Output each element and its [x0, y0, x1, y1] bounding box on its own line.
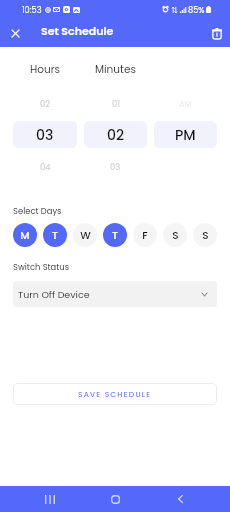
button[interactable]: Back — [167, 486, 193, 512]
staticText: 03 — [110, 161, 121, 173]
button[interactable]: Delete — [207, 24, 226, 43]
staticText: 03 — [36, 125, 54, 145]
button[interactable]: PM — [154, 121, 217, 148]
staticText: 01 — [112, 98, 120, 110]
staticText: S — [172, 228, 179, 243]
staticText: Select Days — [13, 205, 62, 217]
staticText: Set Schedule — [41, 23, 114, 38]
button[interactable]: T — [103, 223, 127, 247]
button[interactable]: Home — [102, 486, 128, 512]
button[interactable]: T — [43, 223, 67, 247]
staticText: 04 — [40, 161, 51, 173]
staticText: Turn Off Device — [18, 288, 90, 301]
button[interactable]: SAVE SCHEDULE — [13, 383, 217, 405]
staticText: Hours — [30, 62, 61, 76]
staticText: T — [52, 228, 58, 243]
button[interactable]: S — [193, 223, 217, 247]
button[interactable]: Turn Off Device — [13, 281, 217, 307]
button[interactable]: S — [163, 223, 187, 247]
button[interactable]: M — [13, 223, 37, 247]
button[interactable]: Recent apps — [37, 486, 63, 512]
staticText: S — [202, 228, 209, 243]
button[interactable]: 02 — [84, 121, 147, 148]
staticText: F — [142, 228, 148, 243]
staticText: Minutes — [95, 62, 136, 76]
staticText: AM — [179, 98, 192, 110]
staticText: T — [112, 228, 118, 243]
button[interactable]: F — [133, 223, 157, 247]
button[interactable]: W — [73, 223, 97, 247]
button[interactable]: 03 — [13, 121, 77, 148]
staticText: Switch Status — [13, 261, 70, 273]
staticText: 10:53 — [22, 4, 42, 15]
staticText: M — [20, 228, 30, 243]
staticText: PM — [175, 125, 196, 145]
staticText: 02 — [40, 98, 50, 110]
staticText: 02 — [107, 125, 125, 145]
staticText: W — [80, 228, 91, 243]
button[interactable]: Close — [6, 24, 25, 43]
staticText: SAVE SCHEDULE — [78, 389, 152, 399]
staticText: 85% — [188, 4, 205, 15]
